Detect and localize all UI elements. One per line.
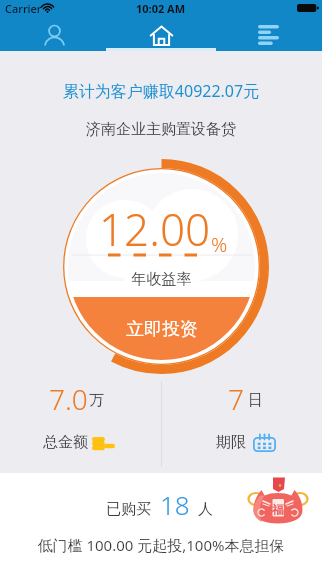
staticText: Carrier [5, 1, 42, 16]
button[interactable]: Menu [215, 20, 322, 51]
staticText: 期限 [216, 433, 246, 452]
button[interactable]: Profile [0, 20, 108, 51]
staticText: 低门槛 100.00 元起投,100%本息担保 [0, 535, 322, 555]
staticText: 已购买 [106, 500, 151, 519]
staticText: 18 [160, 487, 190, 522]
staticText: 济南企业主购置设备贷 [0, 120, 322, 139]
staticText: 7.0 [49, 380, 88, 418]
staticText: 年收益率 [66, 270, 257, 289]
staticText: 10:02 AM [136, 1, 186, 16]
button[interactable]: Lucky bag reward [246, 474, 310, 528]
staticText: 12.00 [99, 199, 211, 259]
staticText: 累计为客户赚取40922.07元 [0, 80, 322, 102]
staticText: 日 [248, 391, 263, 410]
staticText: 万 [89, 391, 104, 410]
staticText: % [211, 231, 228, 258]
staticText: 总金额 [43, 433, 88, 452]
staticText: 立即投资 [126, 318, 198, 341]
staticText: 7 [228, 380, 244, 418]
staticText: 福 [272, 502, 284, 517]
button[interactable]: Home [108, 20, 215, 51]
staticText: 人 [198, 500, 213, 519]
button[interactable]: 立即投资 [68, 297, 255, 360]
